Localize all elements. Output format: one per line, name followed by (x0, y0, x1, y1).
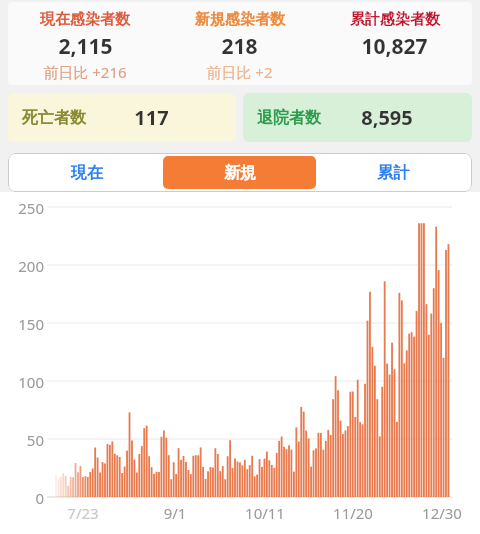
staticText: 2,115 (58, 32, 113, 61)
button[interactable]: 新規 (163, 156, 316, 189)
staticText: 8,595 (361, 104, 413, 131)
staticText: 退院者数 (257, 108, 321, 128)
staticText: 新規 (224, 163, 256, 183)
button[interactable]: 累計感染者数 (317, 2, 472, 85)
staticText: 前日比 +2 (206, 62, 273, 82)
staticText: 200 (0, 256, 44, 276)
staticText: 現在 (71, 163, 103, 183)
staticText: 前日比 +216 (43, 62, 127, 82)
staticText: 12/30 (412, 503, 472, 523)
button[interactable]: 現在感染者数 (8, 2, 162, 85)
button[interactable]: 現在 (11, 156, 163, 189)
staticText: 9/1 (145, 503, 205, 523)
button[interactable]: 死亡者数 (8, 93, 236, 142)
staticText: 11/20 (323, 503, 383, 523)
staticText: 新規感染者数 (195, 10, 285, 29)
staticText: 7/23 (53, 503, 113, 523)
staticText: 100 (0, 372, 44, 392)
staticText: 現在感染者数 (40, 10, 130, 29)
staticText: 0 (0, 488, 44, 508)
button[interactable]: 退院者数 (243, 93, 472, 142)
staticText: 218 (221, 32, 258, 61)
staticText: 50 (0, 430, 44, 450)
button[interactable]: 新規感染者数 (162, 2, 317, 85)
button[interactable]: 新規感染者数の推移グラフ (0, 192, 480, 534)
staticText: 累計感染者数 (350, 10, 440, 29)
staticText: 150 (0, 314, 44, 334)
staticText: 117 (134, 104, 169, 131)
staticText: 10,827 (361, 32, 428, 61)
staticText: 10/11 (235, 503, 295, 523)
staticText: 累計 (377, 163, 409, 183)
staticText: 250 (0, 198, 44, 218)
button[interactable]: 累計 (316, 156, 469, 189)
staticText: 死亡者数 (22, 108, 86, 128)
